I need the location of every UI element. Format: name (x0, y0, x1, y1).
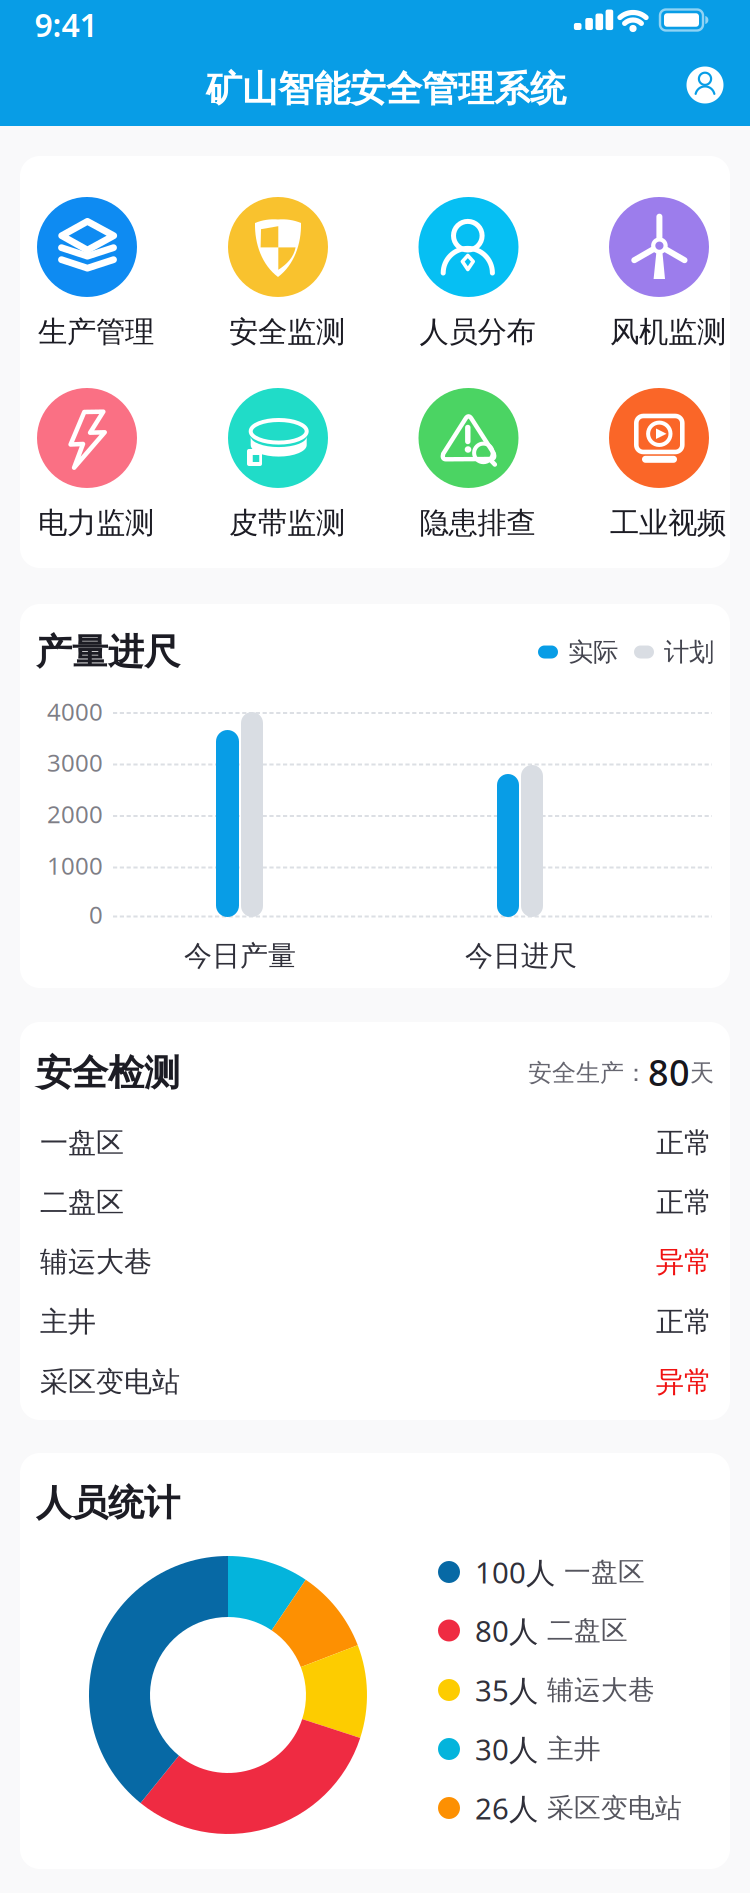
staticText: 人员统计 (36, 1481, 180, 1525)
staticText: 皮带监测 (229, 505, 345, 541)
staticText: 一盘区 (564, 1556, 645, 1588)
staticText: 35人 (475, 1670, 538, 1709)
staticText: 安全生产： (528, 1058, 648, 1088)
staticText: 1000 (47, 850, 103, 881)
staticText: 二盘区 (547, 1614, 628, 1647)
staticText: 3000 (47, 747, 103, 778)
staticText: 主井 (40, 1305, 96, 1339)
staticText: 异常 (656, 1365, 712, 1399)
staticText: 实际 (568, 636, 618, 667)
staticText: 电力监测 (38, 505, 154, 541)
staticText: 二盘区 (40, 1185, 124, 1220)
button[interactable]: 皮带监测 (220, 388, 336, 541)
staticText: 正常 (656, 1126, 712, 1160)
staticText: 人员分布 (419, 314, 535, 350)
staticText: 2000 (47, 798, 103, 830)
staticText: 生产管理 (38, 314, 154, 350)
staticText: 采区变电站 (547, 1792, 682, 1824)
staticText: 80 (648, 1048, 690, 1096)
staticText: 辅运大巷 (547, 1674, 655, 1706)
staticText: 正常 (656, 1185, 712, 1220)
staticText: 一盘区 (40, 1126, 124, 1160)
staticText: 今日进尺 (465, 939, 577, 973)
staticText: 天 (690, 1058, 714, 1088)
button[interactable]: 生产管理 (29, 197, 145, 350)
staticText: 异常 (656, 1245, 712, 1279)
staticText: 隐患排查 (419, 505, 535, 541)
staticText: 0 (89, 899, 103, 930)
button[interactable]: 风机监测 (601, 197, 717, 350)
staticText: 安全监测 (229, 314, 345, 350)
staticText: 9:41 (34, 3, 97, 46)
staticText: 产量进尺 (36, 630, 180, 674)
staticText: 矿山智能安全管理系统 (206, 67, 566, 111)
button[interactable]: 电力监测 (29, 388, 145, 541)
staticText: 80人 (475, 1611, 538, 1650)
staticText: 工业视频 (610, 505, 726, 541)
button[interactable]: 用户 (686, 66, 723, 103)
staticText: 风机监测 (610, 314, 726, 350)
staticText: 采区变电站 (40, 1365, 180, 1399)
button[interactable]: 隐患排查 (410, 388, 526, 541)
button[interactable]: 工业视频 (601, 388, 717, 541)
staticText: 主井 (547, 1733, 601, 1765)
staticText: 100人 (475, 1552, 555, 1591)
staticText: 30人 (475, 1729, 538, 1768)
staticText: 正常 (656, 1305, 712, 1339)
staticText: 26人 (475, 1788, 538, 1827)
staticText: 安全检测 (36, 1051, 180, 1095)
button[interactable]: 安全监测 (220, 197, 336, 350)
staticText: 计划 (664, 636, 714, 667)
staticText: 今日产量 (184, 939, 296, 973)
staticText: 4000 (47, 696, 103, 727)
staticText: 辅运大巷 (40, 1245, 152, 1279)
button[interactable]: 人员分布 (410, 197, 526, 350)
